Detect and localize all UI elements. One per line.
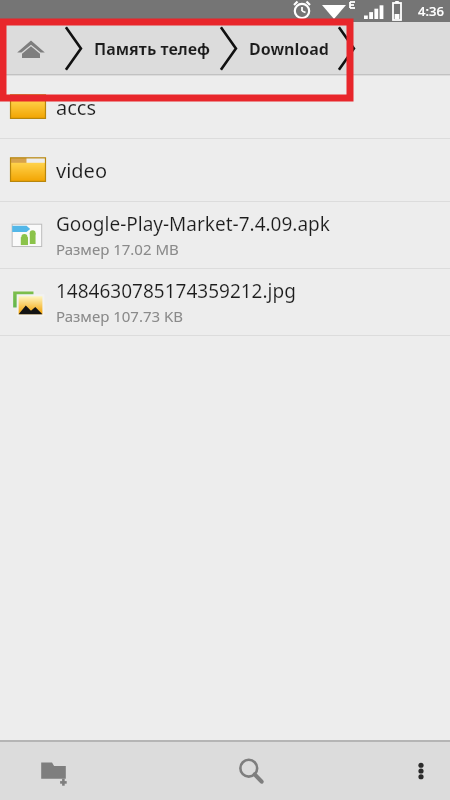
staticText: Размер 17.02 MB — [56, 239, 179, 259]
button[interactable]: 1484630785174359212.jpg — [0, 269, 450, 335]
staticText: Размер 107.73 KB — [56, 306, 184, 326]
button[interactable]: Память телеф — [88, 22, 217, 75]
button[interactable]: accs — [0, 76, 450, 138]
staticText: 1484630785174359212.jpg — [56, 278, 296, 304]
button[interactable]: New folder — [0, 742, 110, 800]
button[interactable]: More options — [392, 742, 450, 800]
staticText: video — [56, 157, 107, 184]
staticText: Google-Play-Market-7.4.09.apk — [56, 211, 330, 237]
button[interactable]: Search — [206, 742, 296, 800]
button[interactable]: video — [0, 139, 450, 201]
staticText: Download — [249, 38, 329, 60]
button[interactable]: Google-Play-Market-7.4.09.apk — [0, 202, 450, 268]
staticText: accs — [56, 94, 96, 121]
button[interactable]: Home — [0, 22, 62, 75]
button[interactable]: Download — [243, 22, 335, 75]
staticText: Память телеф — [94, 38, 211, 60]
staticText: 4:36 — [418, 2, 444, 20]
